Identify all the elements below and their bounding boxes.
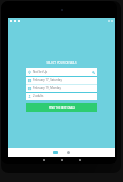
button[interactable]: February 17, Saturday [26, 76, 97, 84]
button[interactable]: FIND THE BEST DEALS [26, 103, 97, 112]
staticText: February 17, Saturday [33, 78, 62, 82]
button[interactable]: 2 adults [26, 92, 97, 100]
staticText: 2 adults [33, 94, 44, 98]
staticText: February 19, Monday [33, 86, 61, 90]
button[interactable]: Search [53, 151, 58, 154]
button[interactable]: Profile [67, 151, 70, 154]
staticText: FIND THE BEST DEALS [49, 106, 75, 109]
staticText: Not Set Up [33, 70, 48, 74]
button[interactable]: February 19, Monday [26, 84, 97, 92]
button[interactable]: Not Set Up [26, 68, 97, 76]
staticText: SELECT YOUR DETAILS [8, 61, 115, 65]
